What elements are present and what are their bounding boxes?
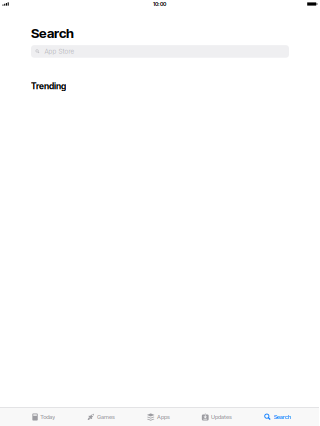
button[interactable]: Search [264, 408, 291, 426]
staticText: Today [40, 413, 55, 420]
staticText: Updates [211, 413, 232, 420]
button[interactable]: Apps [147, 408, 170, 426]
staticText: App Store [44, 47, 74, 55]
staticText: Trending [31, 81, 66, 91]
button[interactable]: Games [87, 408, 115, 426]
staticText: Search [31, 25, 74, 41]
staticText: Games [97, 413, 115, 420]
staticText: Apps [157, 413, 170, 420]
staticText: 10:00 [153, 1, 166, 7]
button[interactable]: App Store [31, 45, 289, 58]
button[interactable]: Updates [202, 408, 232, 426]
staticText: Search [274, 413, 291, 420]
button[interactable]: Today [32, 408, 55, 426]
